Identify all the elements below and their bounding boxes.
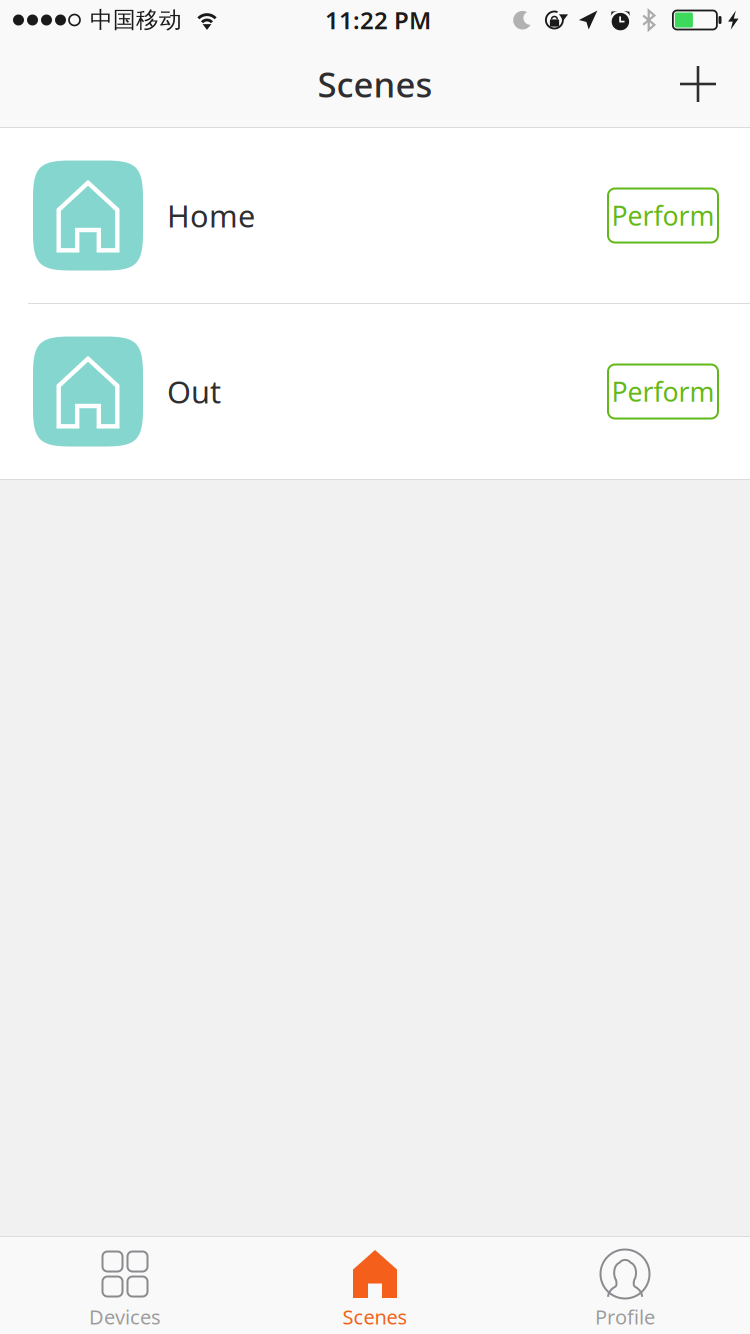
button[interactable]: Perform bbox=[608, 364, 718, 418]
button[interactable]: Scenes bbox=[250, 1236, 500, 1334]
button[interactable]: Perform bbox=[608, 188, 718, 242]
staticText: Devices bbox=[89, 1303, 161, 1330]
button[interactable]: Home bbox=[0, 128, 750, 303]
staticText: Perform bbox=[611, 198, 714, 233]
staticText: Profile bbox=[595, 1303, 655, 1330]
staticText: Scenes bbox=[317, 61, 432, 107]
button[interactable]: Out bbox=[0, 304, 750, 479]
button[interactable]: Devices bbox=[0, 1236, 250, 1334]
staticText: Scenes bbox=[342, 1303, 407, 1330]
staticText: Perform bbox=[611, 374, 714, 409]
staticText: Out bbox=[167, 371, 221, 412]
button[interactable]: Profile bbox=[500, 1236, 750, 1334]
staticText: 11:22 PM bbox=[325, 4, 431, 36]
button[interactable]: Add scene bbox=[663, 40, 750, 128]
staticText: Home bbox=[167, 195, 255, 236]
staticText: 中国移动 bbox=[90, 6, 182, 34]
